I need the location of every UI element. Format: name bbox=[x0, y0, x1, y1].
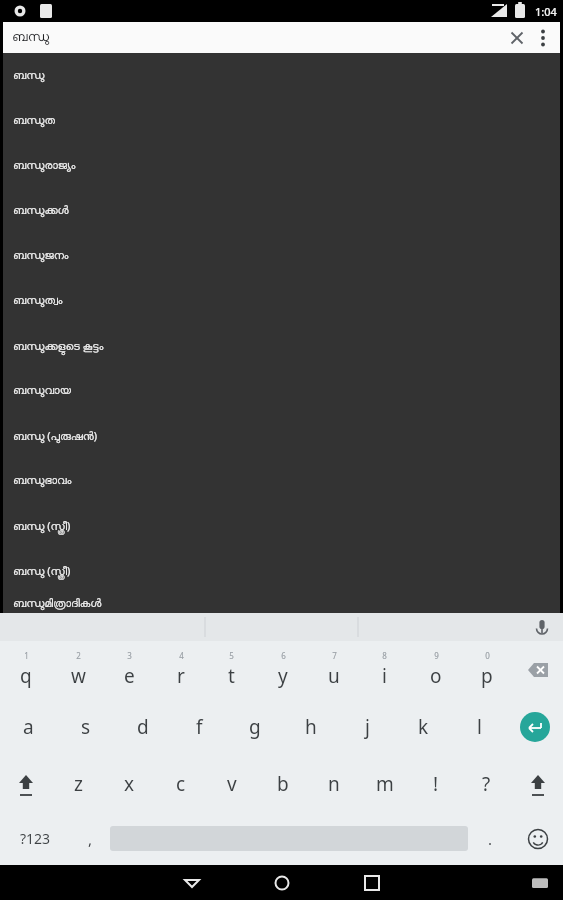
staticText: ?123 bbox=[20, 829, 51, 848]
button[interactable]: More options bbox=[530, 25, 556, 51]
staticText: ബന്ധു bbox=[13, 70, 45, 81]
button[interactable]: 8 bbox=[359, 641, 410, 698]
staticText: 5 bbox=[229, 650, 234, 661]
button[interactable]: ബന്ധുരാജ്യം bbox=[3, 143, 560, 188]
staticText: d bbox=[137, 714, 149, 740]
staticText: ബന്ധുജനം bbox=[13, 250, 69, 261]
button[interactable]: ബന്ധു (സ്ത്രീ) bbox=[3, 503, 560, 548]
button[interactable]: ബന്ധുവായ bbox=[3, 368, 560, 413]
button[interactable]: 3 bbox=[104, 641, 155, 698]
staticText: ബന്ധുരാജ്യം bbox=[13, 160, 76, 171]
staticText: 2 bbox=[76, 650, 81, 661]
button[interactable]: 4 bbox=[155, 641, 206, 698]
button[interactable]: Recents bbox=[352, 865, 392, 900]
staticText: 3 bbox=[127, 650, 132, 661]
button[interactable]: Backspace bbox=[512, 641, 563, 698]
staticText: , bbox=[88, 829, 93, 849]
button[interactable]: ബന്ധുക്കളുടെ കൂട്ടം bbox=[3, 323, 560, 368]
button[interactable]: Back bbox=[172, 865, 212, 900]
staticText: u bbox=[328, 663, 340, 689]
button[interactable]: Shift bbox=[0, 755, 52, 812]
button[interactable]: m bbox=[359, 755, 410, 812]
button[interactable]: 9 bbox=[410, 641, 461, 698]
button[interactable]: ബന്ധുമിത്രാദികൾ bbox=[3, 593, 560, 613]
button[interactable]: ! bbox=[410, 755, 461, 812]
button[interactable]: Enter bbox=[507, 698, 563, 755]
button[interactable]: ബന്ധു (സ്ത്രീ) bbox=[3, 548, 560, 593]
staticText: p bbox=[481, 663, 493, 689]
button[interactable]: ബന്ധുത്വം bbox=[3, 278, 560, 323]
button[interactable]: c bbox=[155, 755, 206, 812]
staticText: ! bbox=[433, 771, 439, 797]
staticText: y bbox=[278, 663, 288, 689]
button[interactable]: ബന്ധുഭാവം bbox=[3, 458, 560, 503]
staticText: ബന്ധു (സ്ത്രീ) bbox=[13, 518, 71, 533]
button[interactable]: 5 bbox=[206, 641, 257, 698]
button[interactable]: Shift bbox=[512, 755, 563, 812]
button[interactable]: x bbox=[104, 755, 155, 812]
button[interactable]: 0 bbox=[461, 641, 512, 698]
button[interactable]: ബന്ധു (പുരുഷൻ) bbox=[3, 413, 560, 458]
staticText: 7 bbox=[332, 650, 337, 661]
staticText: j bbox=[365, 714, 370, 740]
staticText: 0 bbox=[485, 650, 490, 661]
staticText: . bbox=[488, 829, 493, 849]
staticText: ബന്ധുമിത്രാദികൾ bbox=[13, 598, 102, 609]
staticText: b bbox=[277, 771, 289, 797]
button[interactable]: , bbox=[70, 812, 110, 865]
button[interactable]: z bbox=[52, 755, 104, 812]
button[interactable]: ?123 bbox=[0, 812, 70, 865]
button[interactable]: v bbox=[206, 755, 257, 812]
button[interactable]: ബന്ധു bbox=[3, 53, 560, 98]
staticText: o bbox=[430, 663, 442, 689]
staticText: ബന്ധുത്വം bbox=[13, 295, 63, 306]
staticText: i bbox=[382, 663, 387, 689]
staticText: ബന്ധുക്കളുടെ കൂട്ടം bbox=[13, 338, 104, 353]
button[interactable]: s bbox=[57, 698, 114, 755]
button[interactable]: n bbox=[308, 755, 359, 812]
button[interactable]: h bbox=[283, 698, 339, 755]
button[interactable]: ? bbox=[461, 755, 512, 812]
button[interactable]: 1 bbox=[0, 641, 52, 698]
staticText: s bbox=[81, 714, 91, 740]
staticText: n bbox=[328, 771, 340, 797]
button[interactable]: l bbox=[451, 698, 507, 755]
staticText: v bbox=[227, 771, 237, 797]
button[interactable]: Clear bbox=[504, 25, 530, 51]
button[interactable]: Emoji bbox=[513, 812, 563, 865]
button[interactable]: ബന്ധുത bbox=[3, 98, 560, 143]
staticText: a bbox=[23, 714, 34, 740]
staticText: 9 bbox=[434, 650, 439, 661]
button[interactable]: 6 bbox=[257, 641, 308, 698]
staticText: m bbox=[376, 771, 394, 797]
staticText: c bbox=[176, 771, 186, 797]
button[interactable]: 7 bbox=[308, 641, 359, 698]
button[interactable]: Switch keyboard bbox=[525, 868, 555, 898]
button[interactable]: f bbox=[171, 698, 227, 755]
button[interactable]: Home bbox=[262, 865, 302, 900]
button[interactable]: b bbox=[257, 755, 308, 812]
staticText: z bbox=[74, 771, 83, 797]
button[interactable]: d bbox=[114, 698, 171, 755]
staticText: w bbox=[71, 663, 86, 689]
staticText: ബന്ധുവായ bbox=[13, 385, 71, 396]
button[interactable]: g bbox=[227, 698, 283, 755]
staticText: l bbox=[477, 714, 482, 740]
button[interactable]: ബന്ധുജനം bbox=[3, 233, 560, 278]
staticText: q bbox=[20, 663, 32, 689]
staticText: f bbox=[196, 714, 203, 740]
button[interactable]: k bbox=[395, 698, 451, 755]
staticText: h bbox=[305, 714, 317, 740]
button[interactable]: ബന്ധുക്കൾ bbox=[3, 188, 560, 233]
staticText: t bbox=[228, 663, 235, 689]
staticText: 8 bbox=[382, 650, 387, 661]
button[interactable]: . bbox=[468, 812, 513, 865]
button[interactable]: Voice input bbox=[531, 616, 553, 638]
button[interactable]: j bbox=[339, 698, 395, 755]
staticText: ബന്ധുഭാവം bbox=[13, 475, 72, 486]
staticText: 1 bbox=[24, 650, 29, 661]
button[interactable]: a bbox=[0, 698, 57, 755]
button[interactable]: 2 bbox=[52, 641, 104, 698]
staticText: 4 bbox=[179, 650, 184, 661]
